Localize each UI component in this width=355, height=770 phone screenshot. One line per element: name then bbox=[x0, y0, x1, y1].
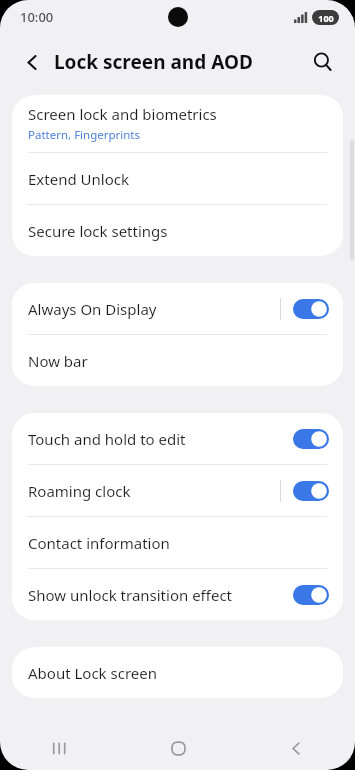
staticText: Always On Display bbox=[28, 299, 157, 319]
button[interactable]: Search bbox=[303, 42, 343, 82]
button[interactable]: Now bar bbox=[12, 335, 343, 386]
staticText: Screen lock and biometrics bbox=[28, 104, 217, 124]
staticText: Roaming clock bbox=[28, 481, 131, 501]
button[interactable]: Touch and hold to edit bbox=[12, 413, 343, 464]
staticText: 100 bbox=[318, 12, 334, 24]
staticText: Touch and hold to edit bbox=[28, 429, 186, 449]
staticText: Extend Unlock bbox=[28, 169, 129, 189]
button[interactable]: Contact information bbox=[12, 517, 343, 568]
staticText: About Lock screen bbox=[28, 663, 157, 683]
button[interactable]: Back bbox=[12, 42, 52, 82]
button[interactable] bbox=[293, 429, 329, 449]
staticText: Contact information bbox=[28, 533, 170, 553]
button[interactable] bbox=[293, 481, 329, 501]
button[interactable]: Home bbox=[119, 726, 237, 770]
staticText: Show unlock transition effect bbox=[28, 585, 233, 605]
button[interactable]: Show unlock transition effect bbox=[12, 569, 343, 620]
button[interactable]: Back bbox=[237, 726, 355, 770]
button[interactable]: Secure lock settings bbox=[12, 205, 343, 256]
button[interactable]: Roaming clock bbox=[12, 465, 343, 516]
button[interactable]: Always On Display bbox=[12, 283, 343, 334]
button[interactable]: Recents bbox=[0, 726, 119, 770]
button[interactable] bbox=[293, 585, 329, 605]
staticText: Lock screen and AOD bbox=[54, 49, 253, 75]
button[interactable]: Screen lock and biometrics bbox=[12, 95, 343, 152]
button[interactable] bbox=[293, 299, 329, 319]
button[interactable]: About Lock screen bbox=[12, 647, 343, 698]
staticText: Secure lock settings bbox=[28, 221, 168, 241]
button[interactable]: Extend Unlock bbox=[12, 153, 343, 204]
staticText: Pattern, Fingerprints bbox=[28, 127, 141, 143]
staticText: Now bar bbox=[28, 351, 88, 371]
staticText: 10:00 bbox=[20, 8, 54, 26]
